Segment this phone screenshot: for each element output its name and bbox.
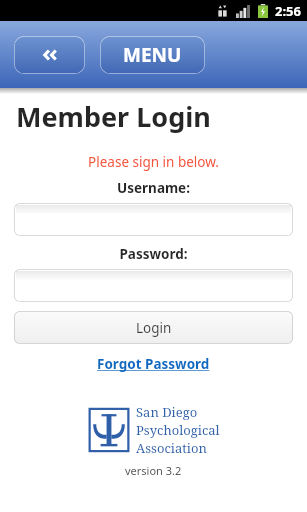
button[interactable]: [14, 269, 293, 302]
staticText: Association: [136, 439, 207, 457]
button[interactable]: MENU: [100, 36, 205, 74]
staticText: Please sign in below.: [0, 153, 307, 171]
staticText: MENU: [123, 42, 182, 68]
staticText: Psychological: [136, 421, 220, 439]
staticText: Username:: [0, 179, 307, 197]
staticText: 2:56: [275, 2, 301, 20]
staticText: San Diego: [136, 403, 198, 421]
button[interactable]: Back: [14, 36, 85, 74]
staticText: Login: [136, 319, 172, 337]
staticText: Member Login: [16, 98, 211, 135]
button[interactable]: Login: [14, 311, 293, 344]
button[interactable]: Forgot Password: [97, 355, 210, 373]
button[interactable]: [14, 203, 293, 236]
staticText: version 3.2: [125, 463, 182, 478]
staticText: Password:: [0, 245, 307, 263]
